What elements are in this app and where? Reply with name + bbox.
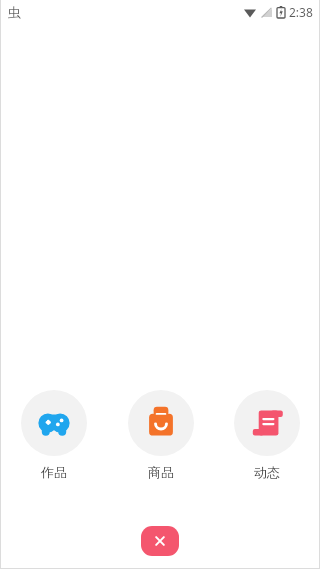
staticText: 动态 [254, 464, 280, 480]
button[interactable]: Close [141, 526, 179, 556]
staticText: 商品 [148, 464, 174, 480]
button[interactable]: 商品 [127, 390, 194, 480]
staticText: 虫 [8, 4, 21, 20]
staticText: 2:38 [289, 4, 313, 20]
staticText: 作品 [41, 464, 67, 480]
button[interactable]: 动态 [233, 390, 300, 480]
button[interactable]: 作品 [20, 390, 87, 480]
